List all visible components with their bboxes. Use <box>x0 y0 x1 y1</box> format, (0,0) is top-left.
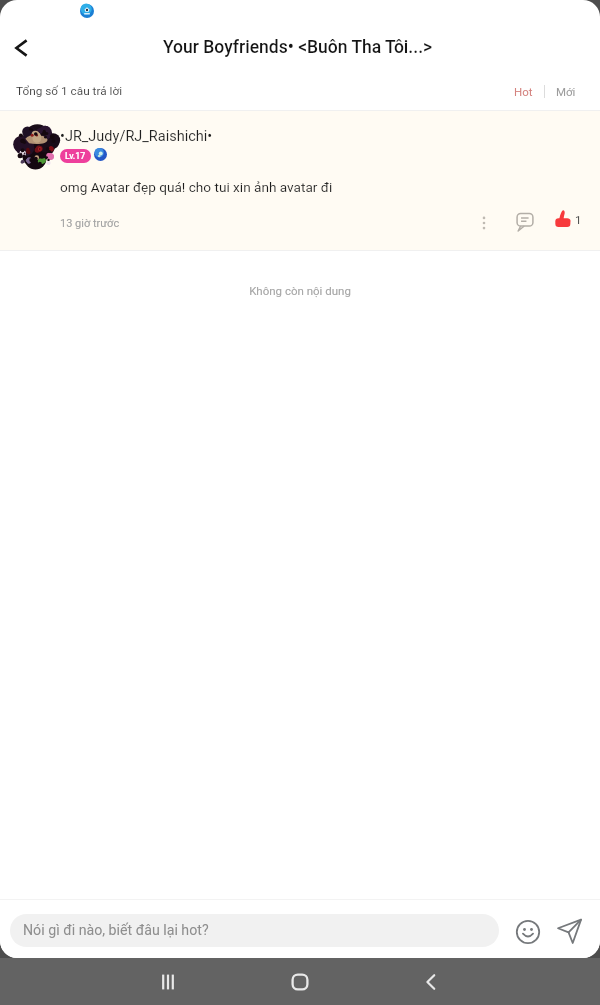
button[interactable]: More options <box>472 211 496 235</box>
staticText: Your Boyfriends• <Buôn Tha Tôi...> <box>163 37 433 58</box>
button[interactable]: Back <box>409 960 453 1004</box>
button[interactable]: Emoji <box>514 918 542 946</box>
staticText: Nói gì đi nào, biết đâu lại hot? <box>23 922 209 939</box>
staticText: •JR_Judy/RJ_Raishichi• <box>60 128 213 145</box>
button[interactable]: 1 <box>552 209 585 229</box>
staticText: Lv.17 <box>65 151 86 161</box>
button[interactable]: Home <box>278 960 322 1004</box>
button[interactable]: Recents <box>146 960 190 1004</box>
button[interactable]: Mới <box>545 78 587 105</box>
staticText: 13 giờ trước <box>60 217 120 230</box>
staticText: Mới <box>556 85 576 98</box>
button[interactable]: Back <box>1 28 41 68</box>
staticText: Hot <box>514 85 533 98</box>
staticText: omg Avatar đẹp quá! cho tui xin ảnh avat… <box>60 179 333 195</box>
staticText: Tổng số 1 câu trả lời <box>16 84 123 98</box>
button[interactable]: Hot <box>503 78 544 105</box>
button[interactable]: •JR_Judy/RJ_Raishichi• <box>0 111 600 250</box>
staticText: Không còn nội dung <box>0 284 600 297</box>
staticText: 1 <box>575 213 582 226</box>
button[interactable]: Nói gì đi nào, biết đâu lại hot? <box>10 914 499 947</box>
button[interactable]: Reply <box>512 209 538 235</box>
button[interactable]: Send <box>554 915 586 947</box>
